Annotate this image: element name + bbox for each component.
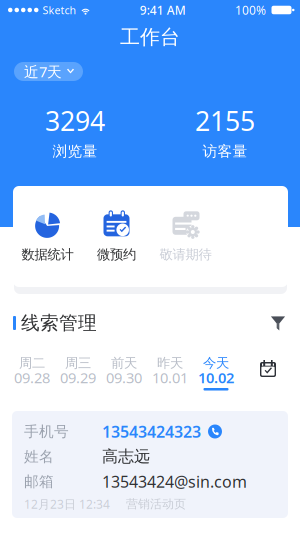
staticText: 营销活动页: [126, 497, 186, 511]
staticText: 100%: [235, 2, 266, 18]
staticText: 近7天: [24, 62, 62, 81]
staticText: 3294: [45, 103, 105, 138]
staticText: 浏览量: [52, 142, 97, 160]
staticText: 9:41 AM: [140, 2, 186, 18]
staticText: 手机号: [24, 422, 69, 440]
staticText: 周二: [19, 355, 45, 371]
staticText: 微预约: [97, 246, 136, 263]
button[interactable]: 昨天: [147, 357, 193, 397]
staticText: 敬请期待: [159, 246, 211, 263]
button[interactable]: 前天: [101, 357, 147, 397]
staticText: 高志远: [102, 447, 150, 466]
staticText: 周三: [65, 355, 91, 371]
staticText: 10.02: [198, 368, 234, 387]
staticText: 13543424323: [102, 421, 201, 442]
button[interactable]: 周二: [9, 357, 55, 397]
button[interactable]: 近7天: [14, 62, 83, 81]
staticText: 09.30: [106, 368, 142, 387]
staticText: 前天: [111, 355, 137, 371]
button[interactable]: 敬请期待: [151, 186, 220, 287]
staticText: 数据统计: [21, 246, 73, 263]
staticText: 今天: [203, 355, 229, 371]
button[interactable]: 数据统计: [13, 186, 82, 287]
staticText: 13543424@sin.com: [102, 471, 247, 492]
staticText: 访客量: [202, 142, 247, 160]
staticText: 邮箱: [24, 472, 54, 490]
staticText: 姓名: [24, 447, 54, 465]
staticText: 09.29: [60, 368, 96, 387]
button[interactable]: 周三: [55, 357, 101, 397]
button[interactable]: Filter: [270, 315, 286, 330]
staticText: 工作台: [120, 25, 180, 49]
staticText: 线索管理: [21, 311, 97, 334]
staticText: Sketch: [42, 3, 76, 17]
button[interactable]: 今天: [193, 357, 239, 397]
staticText: 10.01: [152, 368, 188, 387]
staticText: 昨天: [157, 355, 183, 371]
staticText: 09.28: [14, 368, 50, 387]
button[interactable]: 微预约: [82, 186, 151, 287]
staticText: 12月23日 12:34: [24, 496, 110, 512]
staticText: 2155: [195, 103, 255, 138]
button[interactable]: Pick date: [260, 360, 276, 377]
